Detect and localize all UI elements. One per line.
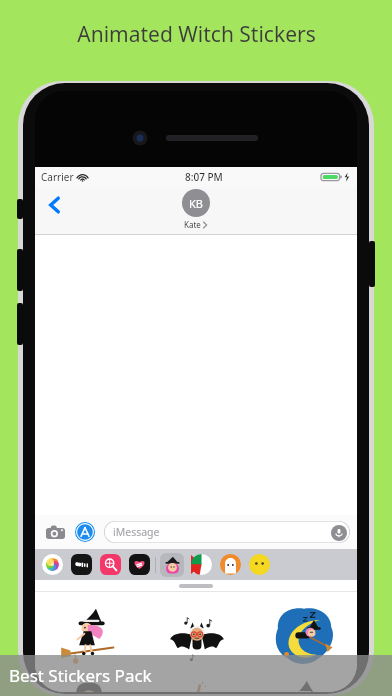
staticText: iMessage: [113, 525, 160, 539]
button[interactable]: More: [248, 553, 271, 576]
staticText: KB: [189, 196, 203, 211]
staticText: 8:07 PM: [185, 170, 223, 184]
button[interactable]: Photos: [41, 553, 64, 576]
button[interactable]: Flags: [190, 553, 213, 576]
button[interactable]: Back: [39, 189, 71, 221]
staticText: Carrier: [41, 170, 74, 184]
button[interactable]: Sleeping witch on moon sticker: [272, 604, 336, 668]
button[interactable]: iMessage: [104, 521, 350, 543]
button[interactable]: Ghost Stickers: [219, 553, 242, 576]
staticText: Kate: [184, 219, 201, 230]
button[interactable]: [179, 584, 213, 588]
button[interactable]: Images: [99, 553, 122, 576]
button[interactable]: Apple Pay: [70, 553, 93, 576]
button[interactable]: KB: [182, 189, 210, 230]
staticText: Animated Witch Stickers: [77, 20, 316, 49]
button[interactable]: Digital Touch: [128, 553, 151, 576]
staticText: Best Stickers Pack: [9, 664, 152, 687]
button[interactable]: Musical bat sticker: [166, 605, 228, 667]
button[interactable]: App Store: [72, 519, 98, 545]
button[interactable]: Flying witch sticker: [58, 605, 120, 667]
button[interactable]: Dictate: [330, 524, 347, 541]
button[interactable]: Camera: [42, 519, 68, 545]
button[interactable]: Witch Stickers: [160, 553, 184, 577]
